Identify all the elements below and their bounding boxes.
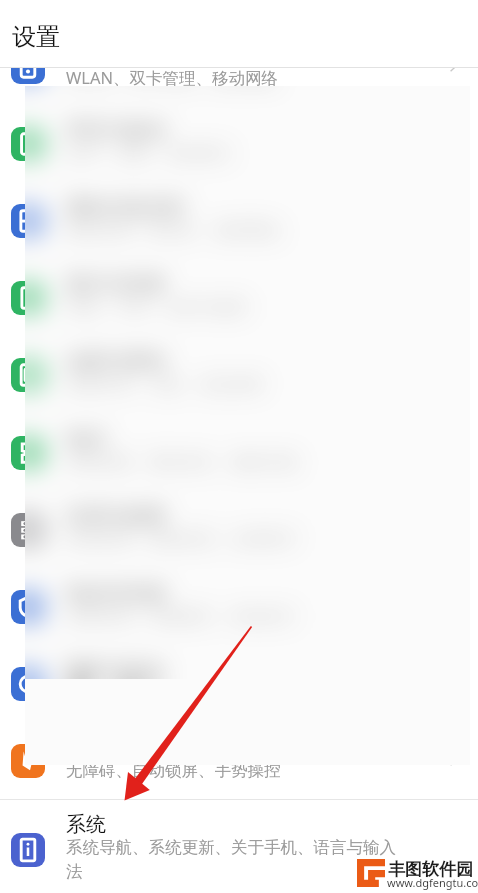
staticText: 桌面与壁纸 (66, 349, 166, 374)
staticText: 通知管理、状态栏、锁屏通知 (66, 220, 281, 241)
staticText: 桌面与壁纸 (66, 349, 166, 374)
staticText: 应用管理、权限管理、应用双开 (66, 529, 297, 550)
staticText: 快捷与辅助 (66, 735, 166, 760)
staticText: 隐私保护、安全检测、密码与指纹 (66, 683, 314, 704)
staticText: 系统 (66, 812, 106, 837)
staticText: 省电管理、性能模式、耗电排行 (66, 606, 297, 627)
staticText: 电话 (66, 427, 106, 452)
staticText: 桌面布局、主题、动态效果 (66, 374, 264, 395)
staticText: 省电管理、性能模式、耗电排行 (66, 606, 297, 627)
staticText: 应用与权限 (66, 504, 166, 529)
button[interactable]: 系统 (0, 800, 478, 893)
staticText: www.dgfengtu.com (387, 875, 478, 890)
staticText: 通知与状态栏 (66, 195, 186, 220)
staticText: 应用与权限 (66, 504, 166, 529)
staticText: 隐私与安全 (66, 658, 166, 683)
staticText: 电话 (66, 427, 106, 452)
staticText: 通知与状态栏 (66, 195, 186, 220)
staticText: 设置 (12, 22, 60, 52)
staticText: WLAN、双卡管理、移动网络 (66, 66, 279, 89)
staticText: 通知管理、状态栏、锁屏通知 (66, 220, 281, 241)
staticText: 系统导航、系统更新、关于手机、语言与输入法 (66, 837, 402, 882)
staticText: 丰图软件园 (388, 859, 473, 880)
staticText: 无障碍、自动锁屏、手势操控 (66, 760, 281, 781)
staticText: 隐私与安全 (66, 658, 166, 679)
staticText: 应用管理、权限管理、应用双开 (66, 529, 297, 550)
staticText: 桌面布局、主题、动态效果 (66, 374, 264, 395)
